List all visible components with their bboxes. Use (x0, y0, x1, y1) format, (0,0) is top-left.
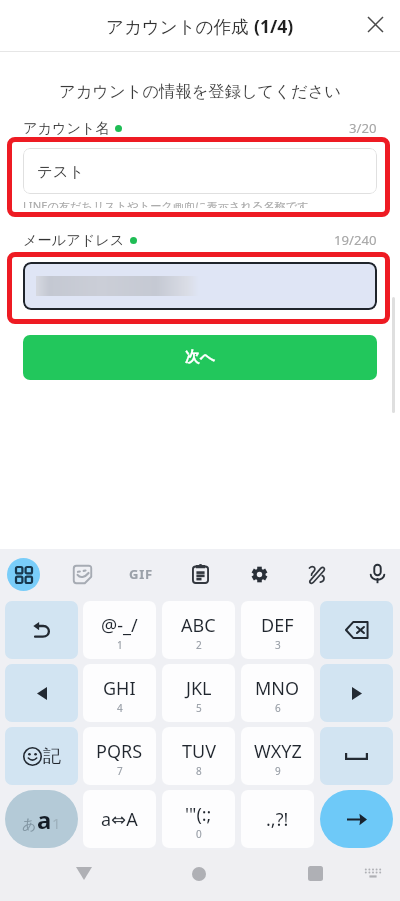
staticText: LINEの友だちリストやトーク画面に表示される名称です (23, 202, 309, 208)
button[interactable]: Clipboard (178, 552, 222, 596)
button[interactable]: right (320, 664, 393, 722)
button[interactable]: Recent apps (293, 851, 337, 895)
button[interactable]: left (5, 664, 78, 722)
staticText: メールアドレス (23, 231, 125, 249)
button[interactable]: .,?! (241, 790, 314, 848)
button[interactable]: Switch keyboard (353, 852, 393, 892)
button[interactable]: del (320, 601, 393, 659)
staticText: a⇔A (101, 807, 138, 832)
button[interactable]: Handwriting (294, 552, 338, 596)
staticText: 3/20 (349, 119, 377, 137)
staticText: 1 (52, 813, 61, 833)
staticText: GHI (103, 676, 136, 701)
staticText: アカウント名 (23, 119, 110, 137)
staticText: 8 (196, 764, 202, 778)
button[interactable]: Home (177, 852, 221, 896)
staticText: 9 (275, 764, 281, 778)
staticText: 1 (117, 638, 123, 652)
button[interactable]: PQRS (83, 727, 156, 785)
staticText: ABC (181, 613, 216, 638)
staticText: TUV (182, 739, 216, 764)
staticText: アカウントの作成 (106, 14, 254, 38)
staticText: 19/240 (334, 231, 377, 249)
button[interactable] (23, 262, 377, 310)
button[interactable]: a⇔A (83, 790, 156, 848)
button[interactable]: GIF (119, 552, 163, 596)
staticText: a (37, 803, 52, 836)
button[interactable]: Close (353, 2, 397, 46)
staticText: (1/4) (254, 14, 294, 38)
staticText: '"(:; (185, 802, 212, 827)
staticText: 5 (196, 701, 202, 715)
staticText: 0 (196, 827, 202, 841)
staticText: 6 (275, 701, 281, 715)
staticText: WXYZ (254, 739, 302, 764)
button[interactable]: Sticker (60, 552, 104, 596)
staticText: あ (22, 816, 37, 834)
staticText: 7 (117, 764, 123, 778)
button[interactable]: テスト (23, 148, 377, 194)
button[interactable]: undo (5, 601, 78, 659)
button[interactable]: space (320, 727, 393, 785)
staticText: アカウントの情報を登録してください (0, 81, 400, 102)
button[interactable]: Settings (237, 552, 281, 596)
button[interactable]: '"(:; (162, 790, 235, 848)
staticText: テスト (37, 162, 85, 181)
button[interactable]: TUV (162, 727, 235, 785)
button[interactable]: 次へ (23, 335, 377, 380)
button[interactable]: MNO (241, 664, 314, 722)
button[interactable]: あ (5, 790, 78, 848)
button[interactable]: Voice input (355, 552, 399, 596)
staticText: GIF (129, 565, 154, 583)
staticText: 3 (275, 638, 281, 652)
staticText: JKL (186, 676, 212, 701)
staticText: 記 (43, 745, 61, 768)
staticText: .,?! (266, 807, 289, 832)
button[interactable]: Apps (1, 552, 45, 596)
staticText: 次へ (185, 348, 215, 367)
button[interactable]: enter (320, 790, 393, 848)
staticText: DEF (261, 613, 294, 638)
staticText: PQRS (96, 739, 143, 764)
button[interactable]: emoji (5, 727, 78, 785)
button[interactable]: DEF (241, 601, 314, 659)
staticText: 2 (196, 638, 202, 652)
staticText: MNO (255, 676, 300, 701)
button[interactable]: ABC (162, 601, 235, 659)
button[interactable]: WXYZ (241, 727, 314, 785)
staticText: @-_/ (101, 613, 138, 638)
button[interactable]: GHI (83, 664, 156, 722)
button[interactable]: Back (62, 851, 106, 895)
button[interactable]: JKL (162, 664, 235, 722)
staticText: 4 (117, 701, 123, 715)
button[interactable]: @-_/ (83, 601, 156, 659)
